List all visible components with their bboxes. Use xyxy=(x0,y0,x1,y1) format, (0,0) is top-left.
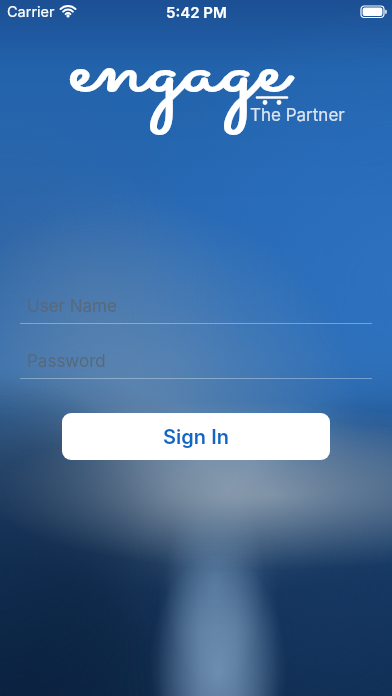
staticText: Sign In xyxy=(163,425,229,449)
button[interactable]: Password xyxy=(0,348,392,378)
staticText: engage xyxy=(69,12,288,135)
staticText: User Name xyxy=(27,296,117,317)
button[interactable]: Sign In xyxy=(62,413,330,460)
staticText: The Partner xyxy=(250,105,345,126)
staticText: Carrier xyxy=(7,3,55,21)
button[interactable]: User Name xyxy=(0,293,392,323)
staticText: Password xyxy=(27,351,106,372)
staticText: 5:42 PM xyxy=(166,3,227,21)
staticText: engage xyxy=(69,12,288,135)
